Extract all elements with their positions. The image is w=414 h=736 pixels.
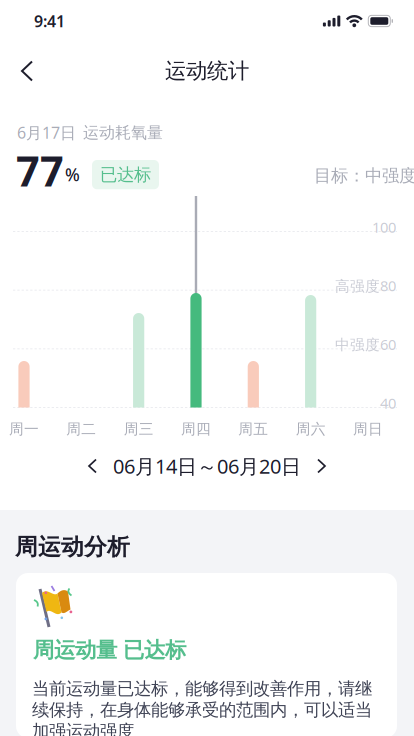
staticText: 已达标: [100, 164, 151, 185]
staticText: %: [65, 163, 80, 186]
staticText: 周运动分析: [15, 533, 130, 561]
button[interactable]: Back: [6, 48, 48, 93]
staticText: 周四: [181, 420, 211, 438]
button[interactable]: Previous week: [76, 449, 109, 482]
staticText: 运动统计: [165, 58, 249, 84]
staticText: 运动耗氧量: [83, 123, 163, 142]
staticText: 周六: [296, 420, 326, 438]
staticText: 周日: [353, 420, 383, 438]
staticText: 40: [380, 393, 396, 413]
button[interactable]: Next week: [305, 449, 338, 482]
staticText: 06月14日～06月20日: [113, 453, 301, 479]
staticText: 当前运动量已达标，能够得到改善作用，请继续保持，在身体能够承受的范围内，可以适当…: [32, 678, 372, 736]
staticText: 周五: [238, 420, 268, 438]
staticText: 9:41: [34, 10, 65, 32]
staticText: 100: [372, 217, 396, 237]
staticText: 周二: [66, 420, 96, 438]
staticText: 周运动量 已达标: [33, 637, 186, 663]
staticText: 目标：中强度: [314, 165, 414, 186]
staticText: 周三: [124, 420, 154, 438]
staticText: 中强度60: [335, 335, 396, 354]
staticText: 6月17日: [17, 122, 76, 143]
staticText: 周一: [9, 420, 39, 438]
staticText: 77: [16, 143, 64, 198]
staticText: 高强度80: [335, 276, 396, 295]
